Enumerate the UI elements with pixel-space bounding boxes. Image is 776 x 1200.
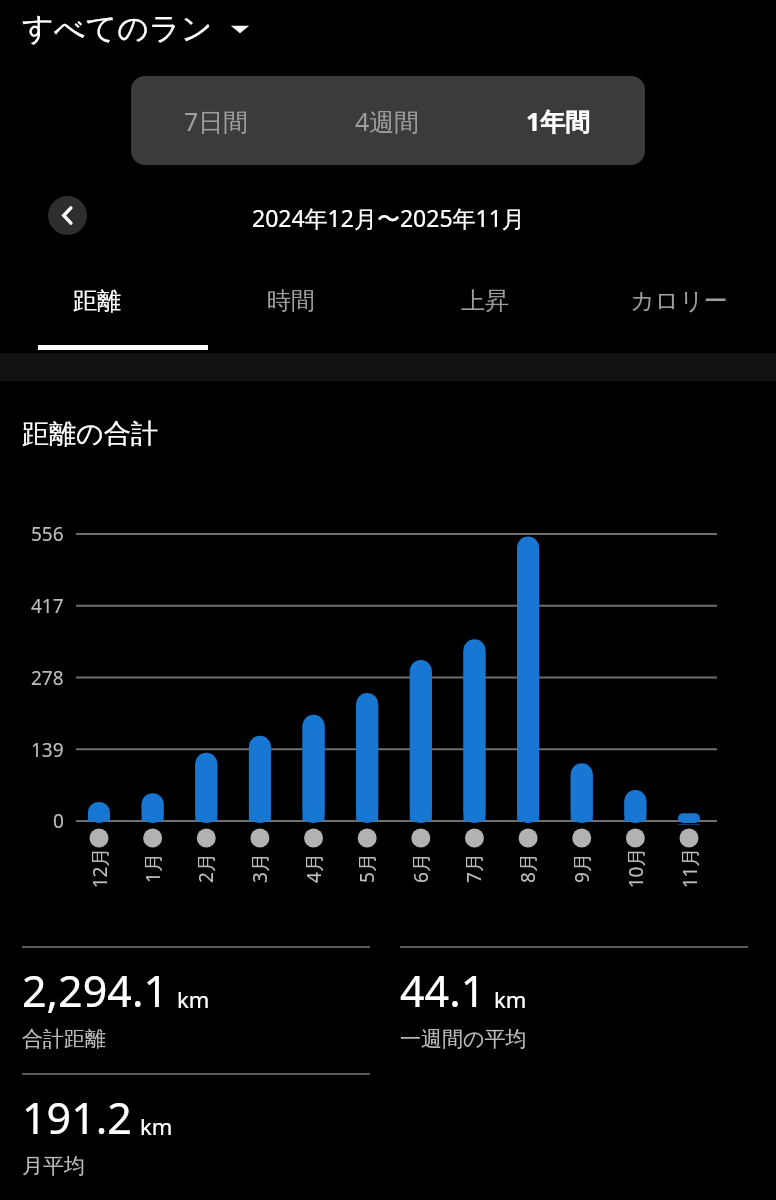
staticText: 距離の合計 [22,417,158,451]
staticText: 4週間 [355,104,420,138]
staticText: 1年間 [526,104,591,138]
button[interactable]: 1年間 [473,76,644,165]
staticText: km [177,984,210,1014]
staticText: 2024年12月〜2025年11月 [252,202,525,233]
button[interactable]: 44.1 [400,946,748,1052]
staticText: 2,294.1 [22,961,169,1020]
staticText: 556 [31,521,64,547]
staticText: 10月 [622,847,648,888]
button[interactable]: すべてのラン [22,9,251,48]
staticText: km [494,984,527,1014]
staticText: 距離 [73,286,121,316]
staticText: 2月 [193,853,219,883]
button[interactable]: 4週間 [302,76,473,165]
staticText: 6月 [408,853,434,883]
staticText: 12月 [86,847,112,888]
staticText: 44.1 [400,961,486,1020]
button[interactable]: 2,294.1 [22,946,370,1052]
staticText: 0 [53,808,64,834]
button[interactable]: 7日間 [131,76,302,165]
staticText: 合計距離 [22,1026,106,1052]
button[interactable]: 時間 [194,286,388,334]
staticText: 一週間の平均 [400,1026,527,1052]
staticText: 1月 [140,853,166,883]
staticText: 7日間 [184,104,249,138]
staticText: 139 [31,737,64,763]
staticText: 月平均 [22,1153,85,1179]
button[interactable]: 距離 [0,286,194,334]
staticText: 191.2 [22,1088,132,1147]
button[interactable]: カロリー [582,286,776,334]
staticText: 上昇 [461,286,509,316]
staticText: 278 [31,665,64,691]
staticText: 時間 [267,286,315,316]
button[interactable]: 前の期間 [48,196,87,235]
staticText: 3月 [247,853,273,883]
staticText: カロリー [630,286,728,316]
staticText: 8月 [515,853,541,883]
staticText: 4月 [301,853,327,883]
staticText: 9月 [569,853,595,883]
staticText: km [140,1111,173,1141]
button[interactable]: 上昇 [388,286,582,334]
staticText: 7月 [461,853,487,883]
button[interactable]: 191.2 [22,1073,370,1179]
staticText: 11月 [676,847,702,888]
staticText: すべてのラン [22,9,213,48]
staticText: 5月 [354,853,380,883]
staticText: 417 [31,593,64,619]
